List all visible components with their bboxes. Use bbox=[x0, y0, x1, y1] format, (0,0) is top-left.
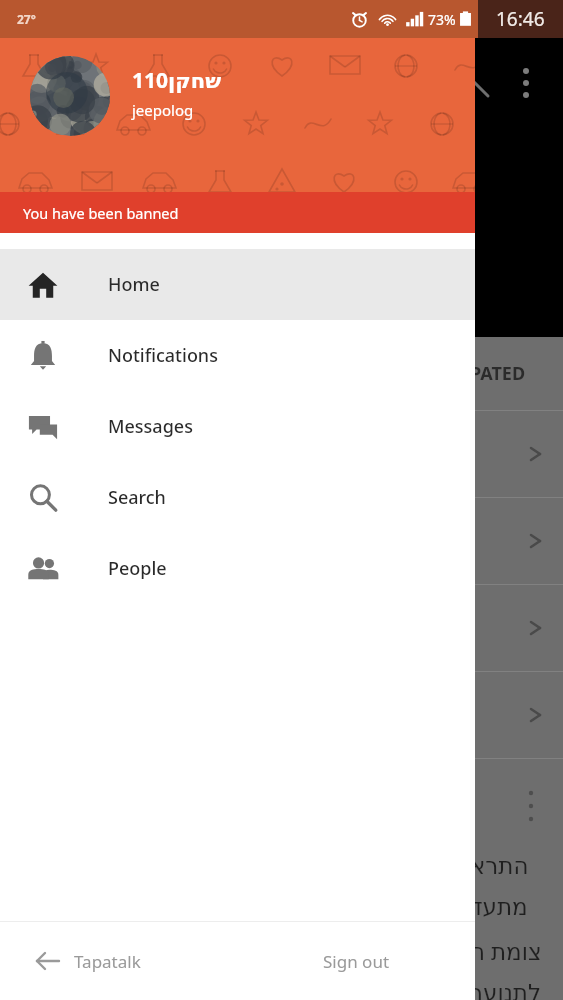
staticText: 27° bbox=[17, 11, 36, 27]
button[interactable]: You have been banned bbox=[0, 192, 475, 233]
staticText: You have been banned bbox=[23, 203, 179, 223]
button[interactable]: Notifications bbox=[0, 320, 475, 391]
button[interactable] bbox=[0, 585, 563, 671]
staticText: People bbox=[108, 556, 167, 581]
staticText: jeepolog bbox=[132, 100, 194, 120]
staticText: PATED bbox=[470, 361, 526, 386]
staticText: Sign out bbox=[323, 950, 390, 973]
button[interactable] bbox=[0, 498, 563, 584]
staticText: מתעד bbox=[470, 894, 563, 921]
staticText: 73% bbox=[428, 10, 456, 29]
button[interactable]: Messages bbox=[0, 391, 475, 462]
button[interactable]: Home bbox=[0, 249, 475, 320]
staticText: Tapatalk bbox=[74, 950, 141, 973]
staticText: Notifications bbox=[108, 343, 218, 368]
button[interactable]: More options bbox=[522, 789, 540, 823]
button[interactable]: More options bbox=[517, 68, 535, 98]
staticText: שחקן110 bbox=[132, 66, 222, 95]
staticText: צומת ה bbox=[470, 935, 563, 966]
staticText: Messages bbox=[108, 414, 193, 439]
button[interactable]: Search bbox=[0, 462, 475, 533]
staticText: Search bbox=[108, 485, 166, 510]
button[interactable]: Tapatalk bbox=[0, 922, 237, 1000]
button[interactable] bbox=[0, 672, 563, 758]
staticText: התרא bbox=[470, 853, 563, 880]
staticText: Home bbox=[108, 272, 160, 297]
button[interactable]: Sign out bbox=[237, 922, 475, 1000]
button[interactable]: Search bbox=[470, 78, 496, 104]
button[interactable] bbox=[30, 56, 110, 136]
button[interactable]: People bbox=[0, 533, 475, 604]
button[interactable] bbox=[0, 411, 563, 497]
staticText: לתנוער bbox=[470, 980, 563, 1000]
staticText: 16:46 bbox=[496, 6, 545, 32]
